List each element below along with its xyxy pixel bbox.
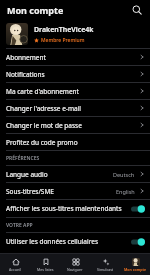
staticText: DrakenTheVice4k [34,25,94,35]
button[interactable]: Changer le mot de passe [0,117,150,133]
button[interactable]: Changer l'adresse e-mail [0,100,150,116]
staticText: Changer le mot de passe [6,121,139,130]
staticText: Membre Premium [41,37,85,44]
button[interactable]: Profitez du code promo [0,134,150,150]
button[interactable]: Accueil [0,255,30,274]
button[interactable]: Notifications [0,66,150,82]
staticText: Deutsch [113,171,135,178]
staticText: Naviguer [67,267,83,272]
button[interactable]: Utiliser les données cellulaires [0,233,150,250]
staticText: Ma carte d'abonnement [6,87,139,96]
button[interactable]: Mes listes [30,255,60,274]
staticText: PRÉFÉRENCES [6,155,40,162]
staticText: Mes listes [37,267,54,272]
staticText: Afficher les sous-titres malentendants [6,204,127,213]
staticText: Utiliser les données cellulaires [6,237,127,246]
staticText: Mon compte [7,4,64,16]
staticText: Abonnement [6,53,139,62]
staticText: Langue audio [6,170,113,179]
staticText: Accueil [9,267,21,272]
staticText: English [116,188,135,195]
staticText: Simulcast [97,267,114,272]
button[interactable]: Ma carte d'abonnement [0,83,150,99]
staticText: Profitez du code promo [6,138,145,147]
button[interactable]: Afficher les sous-titres malentendants [0,200,150,217]
button[interactable]: Sous-titres/SME [0,183,150,199]
button[interactable]: Mon compte [120,255,150,274]
button[interactable]: Photo de profil [0,20,150,48]
staticText: Mon compte [124,267,147,272]
button[interactable]: Simulcast [90,255,120,274]
button[interactable]: Photo de profil [6,23,28,45]
button[interactable]: Rechercher [129,2,145,18]
staticText: VOTRE APP [6,222,33,229]
staticText: Notifications [6,70,139,79]
button[interactable]: Naviguer [60,255,90,274]
button[interactable]: Langue audio [0,166,150,182]
button[interactable]: Abonnement [0,49,150,65]
staticText: Changer l'adresse e-mail [6,104,139,113]
staticText: Sous-titres/SME [6,187,116,196]
